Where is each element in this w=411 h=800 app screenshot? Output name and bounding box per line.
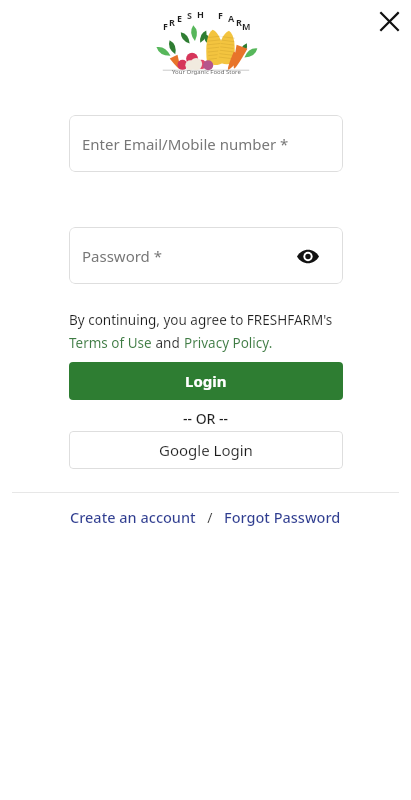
staticText: Create an account <box>70 507 196 527</box>
button[interactable]: Google Login <box>69 431 343 469</box>
button[interactable]: Close <box>370 2 408 40</box>
button[interactable]: Create an account <box>66 502 200 532</box>
staticText: H <box>197 8 204 20</box>
staticText: and <box>152 334 184 352</box>
button[interactable]: Terms of Use <box>69 334 152 352</box>
staticText: Privacy Policy. <box>184 334 273 352</box>
button[interactable]: Enter Email/Mobile number * <box>69 115 343 172</box>
staticText: -- OR -- <box>183 409 229 428</box>
button[interactable]: Login <box>69 362 343 400</box>
button[interactable]: Password * <box>69 227 343 284</box>
button[interactable]: Show password <box>293 241 323 271</box>
staticText: A <box>228 12 235 24</box>
staticText: F <box>163 20 168 32</box>
staticText: E <box>177 12 183 24</box>
staticText: S <box>187 9 192 21</box>
staticText: Password * <box>82 246 163 266</box>
button[interactable]: Forgot Password <box>220 502 345 532</box>
staticText: F <box>218 9 223 21</box>
staticText: Google Login <box>159 440 253 460</box>
staticText: By continuing, you agree to FRESHFARM's <box>69 311 333 329</box>
staticText: Terms of Use <box>69 334 152 352</box>
staticText: M <box>242 20 251 32</box>
staticText: Login <box>185 371 227 391</box>
staticText: R <box>169 16 175 28</box>
staticText: / <box>200 508 220 527</box>
button[interactable]: Privacy Policy. <box>184 334 273 352</box>
staticText: Forgot Password <box>224 507 341 527</box>
staticText: Your Organic Food Store <box>172 68 241 76</box>
staticText: R <box>236 16 242 28</box>
staticText: Enter Email/Mobile number * <box>82 134 289 154</box>
